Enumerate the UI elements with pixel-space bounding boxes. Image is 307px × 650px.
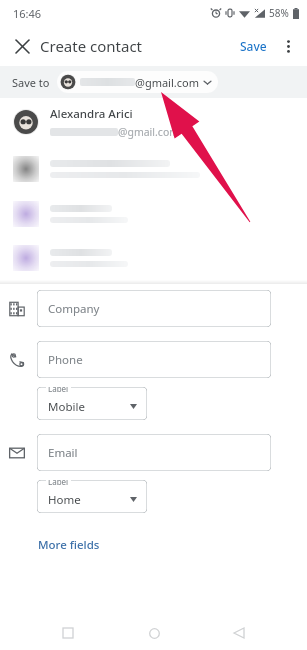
staticText: Email [48,445,78,461]
staticText: Label [48,480,69,487]
button[interactable] [0,236,307,280]
button[interactable]: Alexandra Arici [0,98,307,146]
staticText: 58% [269,6,289,20]
button[interactable]: Save [236,34,271,58]
staticText: 16:46 [13,6,42,21]
button[interactable]: More fields [34,534,104,556]
staticText: Label [48,387,69,394]
button[interactable]: Company [37,290,271,327]
button[interactable]: Recent apps [51,616,85,650]
staticText: Home [48,492,81,508]
staticText: Save to [12,75,50,90]
staticText: Save [240,38,267,54]
button[interactable]: Label [37,480,147,513]
button[interactable]: Label [37,387,147,420]
staticText: Create contact [40,36,143,56]
button[interactable]: Email [37,434,271,471]
button[interactable]: Home [137,616,171,650]
button[interactable]: More options [275,33,301,59]
staticText: Phone [48,352,83,368]
button[interactable]: @gmail.com [57,71,218,93]
button[interactable]: Close [8,32,36,60]
staticText: @gmail.com [135,75,199,90]
button[interactable] [0,192,307,236]
button[interactable] [0,146,307,192]
staticText: @gmail.com [118,125,180,139]
staticText: Alexandra Arici [50,106,133,122]
button[interactable]: Phone [37,341,271,378]
button[interactable]: Back [222,616,256,650]
staticText: More fields [38,537,100,553]
staticText: Mobile [48,399,85,415]
staticText: Company [48,301,100,317]
